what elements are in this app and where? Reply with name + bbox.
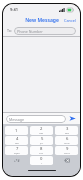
button[interactable]: 0 (30, 156, 53, 165)
staticText: +*# (14, 159, 20, 163)
staticText: WXYZ (64, 152, 70, 155)
staticText: 2 (40, 126, 43, 132)
staticText: 4 (16, 136, 19, 142)
staticText: TUV (39, 152, 44, 155)
button[interactable]: 6 (55, 136, 78, 145)
button[interactable]: 2 (30, 126, 53, 135)
button[interactable]: 9 (55, 146, 78, 155)
staticText: + (41, 162, 43, 165)
staticText: JKL (40, 142, 44, 145)
button[interactable]: 7 (5, 146, 28, 155)
button[interactable]: Message (6, 115, 66, 123)
staticText: To: (7, 28, 12, 33)
button[interactable]: 3 (55, 126, 78, 135)
staticText: MNO (64, 142, 70, 145)
button[interactable]: Send (68, 114, 77, 123)
staticText: 0 (40, 156, 43, 162)
button[interactable]: 1 (5, 126, 28, 135)
staticText: PQRS (14, 152, 20, 155)
staticText: Message (9, 117, 24, 122)
staticText: 1 (15, 128, 18, 134)
button[interactable]: Symbols (5, 156, 28, 165)
button[interactable]: 5 (30, 136, 53, 145)
button[interactable]: 4 (5, 136, 28, 145)
staticText: Cancel (64, 18, 76, 23)
staticText: 8 (40, 146, 43, 152)
staticText: 7 (16, 146, 19, 152)
button[interactable]: Phone Number (14, 27, 76, 35)
button[interactable]: Cancel (60, 16, 80, 25)
button[interactable]: Delete (55, 156, 78, 165)
staticText: GHI (15, 142, 19, 145)
staticText: DEF (65, 132, 69, 135)
staticText: Phone Number (17, 29, 43, 34)
staticText: 6 (66, 136, 69, 142)
staticText: 9 (66, 146, 69, 152)
staticText: 5 (41, 136, 44, 142)
staticText: ABC (39, 132, 44, 135)
staticText: 9:41 (10, 7, 18, 12)
button[interactable]: 8 (30, 146, 53, 155)
staticText: 3 (66, 126, 69, 132)
staticText: New Message (25, 17, 59, 24)
